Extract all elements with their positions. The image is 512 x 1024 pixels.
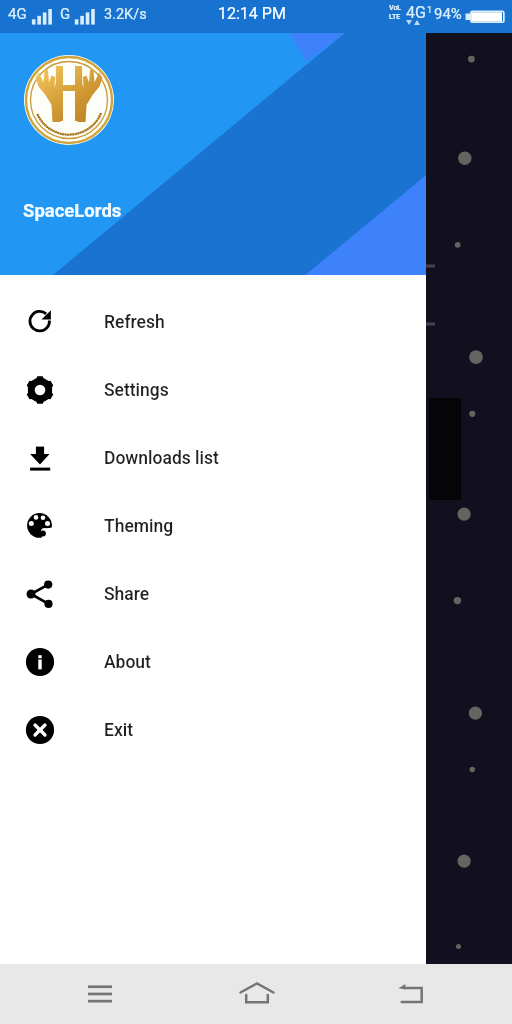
staticText: 12:14 PM (218, 4, 286, 23)
staticText: VoL (389, 4, 402, 12)
staticText: Theming (104, 516, 174, 537)
staticText: 1 (427, 5, 433, 16)
button[interactable]: Theming (0, 492, 426, 560)
button[interactable]: About (0, 628, 426, 696)
button[interactable]: Recent apps (64, 964, 136, 1024)
staticText: SpaceLords (23, 200, 122, 222)
staticText: LTE (389, 13, 401, 21)
button[interactable]: Back (376, 964, 448, 1024)
staticText: 94% (434, 5, 462, 23)
staticText: Refresh (104, 312, 165, 333)
button[interactable]: Exit (0, 696, 426, 764)
staticText: G (60, 5, 71, 23)
button[interactable]: Downloads list (0, 424, 426, 492)
staticText: Downloads list (104, 448, 219, 469)
staticText: 4G (8, 5, 27, 23)
staticText: Settings (104, 380, 169, 401)
staticText: About (104, 652, 151, 673)
button[interactable]: Refresh (0, 288, 426, 356)
button[interactable]: Home (221, 964, 293, 1024)
staticText: Exit (104, 720, 133, 741)
staticText: 3.2K/s (104, 6, 147, 23)
button[interactable]: Share (0, 560, 426, 628)
staticText: 4G (406, 3, 426, 22)
staticText: Share (104, 584, 150, 605)
button[interactable]: Settings (0, 356, 426, 424)
